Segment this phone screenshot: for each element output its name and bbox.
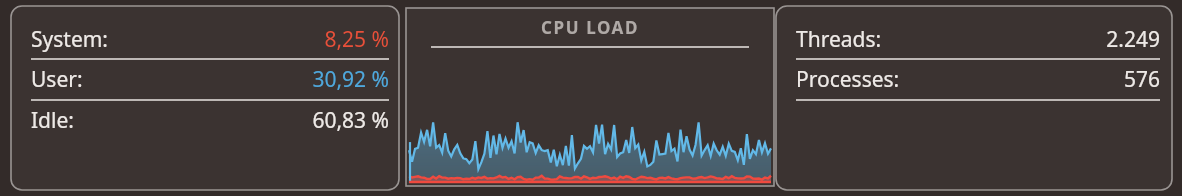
button[interactable]: Threads: <box>796 20 1160 60</box>
staticText: User: <box>31 65 83 94</box>
staticText: 8,25 % <box>324 25 389 54</box>
staticText: Idle: <box>31 106 74 135</box>
button[interactable]: User: <box>31 60 389 101</box>
button[interactable]: Processes: <box>796 60 1160 101</box>
button[interactable]: CPU LOAD <box>406 8 774 46</box>
staticText: CPU LOAD <box>541 16 640 39</box>
staticText: 30,92 % <box>312 65 389 94</box>
staticText: 60,83 % <box>312 106 389 135</box>
other: CPU load history graph <box>409 117 771 183</box>
staticText: System: <box>31 25 108 54</box>
staticText: 2.249 <box>1106 25 1160 54</box>
staticText: Threads: <box>796 25 882 54</box>
staticText: Processes: <box>796 65 900 94</box>
button[interactable]: Idle: <box>31 101 389 140</box>
button[interactable]: System: <box>31 20 389 60</box>
staticText: 576 <box>1123 65 1160 94</box>
